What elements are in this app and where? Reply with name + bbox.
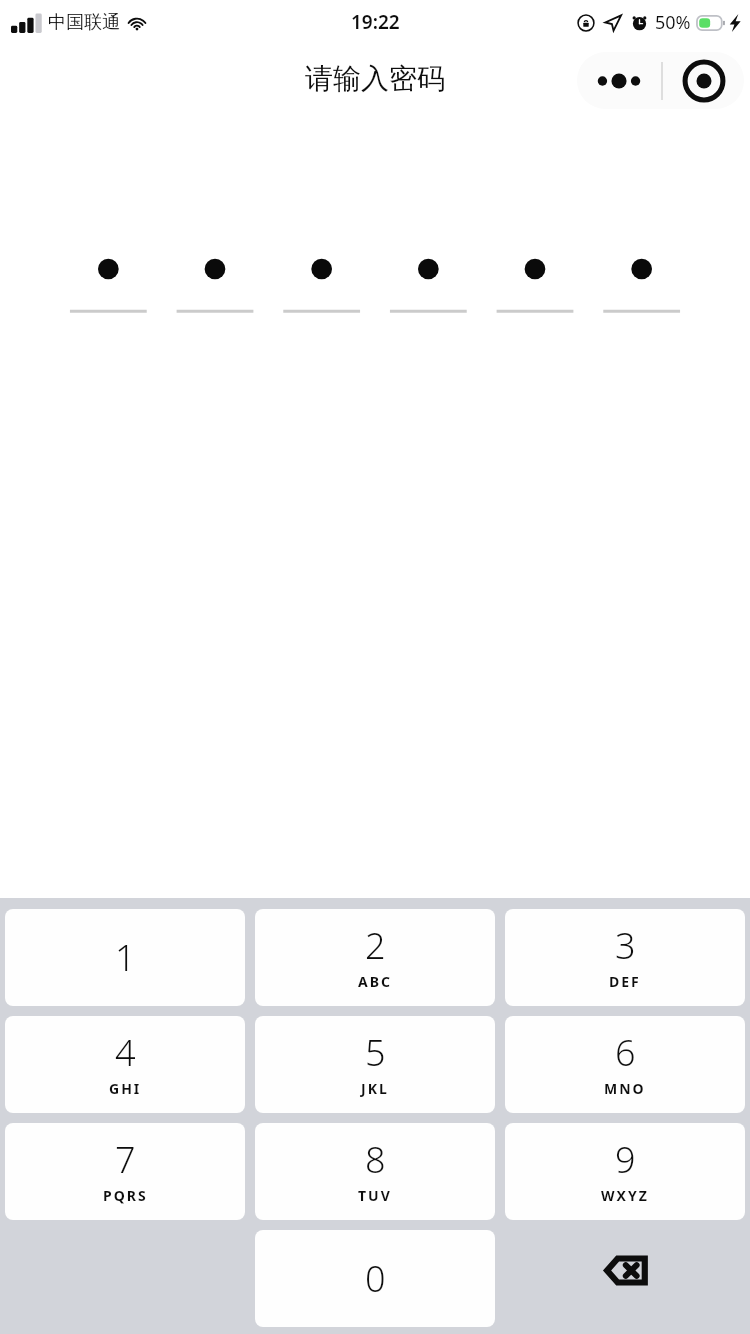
staticText: 1 xyxy=(115,933,136,982)
staticText: TUV xyxy=(358,1186,392,1205)
staticText: WXYZ xyxy=(601,1186,649,1205)
staticText: ABC xyxy=(358,972,392,991)
staticText: 50% xyxy=(655,10,691,35)
staticText: 中国联通 xyxy=(48,11,120,34)
staticText: DEF xyxy=(609,972,641,991)
button[interactable]: 6 xyxy=(505,1016,745,1113)
staticText: PQRS xyxy=(103,1186,148,1205)
staticText: JKL xyxy=(361,1079,389,1098)
staticText: 8 xyxy=(365,1135,386,1184)
button[interactable]: 0 xyxy=(255,1230,495,1327)
staticText: 9 xyxy=(615,1135,636,1184)
button[interactable]: 7 xyxy=(5,1123,245,1220)
button[interactable]: 3 xyxy=(505,909,745,1006)
staticText: GHI xyxy=(109,1079,142,1098)
staticText: 2 xyxy=(365,921,386,970)
button[interactable]: 8 xyxy=(255,1123,495,1220)
button[interactable]: 5 xyxy=(255,1016,495,1113)
staticText: 5 xyxy=(365,1028,386,1077)
button[interactable]: 4 xyxy=(5,1016,245,1113)
button[interactable]: Backspace xyxy=(500,1225,750,1332)
staticText: 7 xyxy=(115,1135,136,1184)
staticText: 19:22 xyxy=(351,9,400,35)
button[interactable]: 1 xyxy=(5,909,245,1006)
staticText: 6 xyxy=(615,1028,636,1077)
staticText: MNO xyxy=(604,1079,646,1098)
button[interactable]: 9 xyxy=(505,1123,745,1220)
button[interactable]: 2 xyxy=(255,909,495,1006)
staticText: 3 xyxy=(615,921,636,970)
staticText: 请输入密码 xyxy=(305,61,445,96)
staticText: 0 xyxy=(365,1254,386,1303)
staticText: 4 xyxy=(115,1028,136,1077)
button[interactable]: Close mini program xyxy=(663,52,744,109)
button[interactable]: More options xyxy=(577,52,661,109)
